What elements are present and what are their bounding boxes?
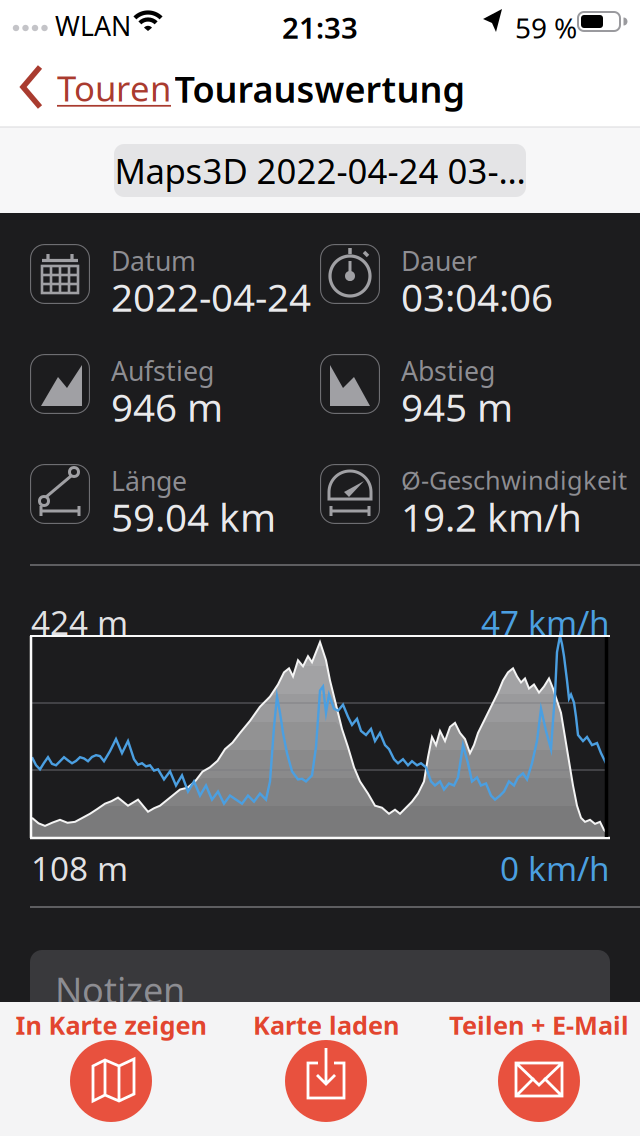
staticText: Abstieg xyxy=(401,353,495,388)
staticText: Aufstieg xyxy=(111,353,214,388)
staticText: 946 m xyxy=(111,381,223,432)
staticText: Ø-Geschwindigkeit xyxy=(401,463,627,497)
staticText: Maps3D 2022-04-24 03-... xyxy=(114,147,525,193)
staticText: 945 m xyxy=(401,381,513,432)
button[interactable]: Karte laden xyxy=(0,0,640,1136)
button[interactable]: In Karte zeigen xyxy=(0,0,640,1136)
staticText: WLAN xyxy=(55,8,131,43)
staticText: Notizen xyxy=(55,966,185,1014)
staticText: Touren xyxy=(57,65,171,111)
staticText: 21:33 xyxy=(282,8,358,47)
button[interactable]: Teilen + E-Mail xyxy=(0,0,640,1136)
staticText: In Karte zeigen xyxy=(15,1008,206,1042)
button[interactable]: Maps3D 2022-04-24 03-... xyxy=(114,144,526,197)
staticText: 424 m xyxy=(31,600,128,644)
staticText: 108 m xyxy=(31,846,128,890)
staticText: Datum xyxy=(111,243,196,278)
staticText: Karte laden xyxy=(253,1008,399,1042)
button[interactable]: Notizen xyxy=(30,950,610,1014)
staticText: 03:04:06 xyxy=(401,271,553,322)
staticText: Tourauswertung xyxy=(174,65,465,113)
staticText: 59 % xyxy=(515,9,577,46)
staticText: 0 km/h xyxy=(500,846,610,890)
staticText: Länge xyxy=(111,463,187,498)
button[interactable]: Touren xyxy=(0,0,170,87)
staticText: 19.2 km/h xyxy=(401,491,582,542)
staticText: 47 km/h xyxy=(481,600,610,644)
staticText: Teilen + E-Mail xyxy=(449,1008,629,1042)
staticText: 59.04 km xyxy=(111,491,276,542)
staticText: 2022-04-24 xyxy=(111,271,311,322)
staticText: Dauer xyxy=(401,243,477,278)
